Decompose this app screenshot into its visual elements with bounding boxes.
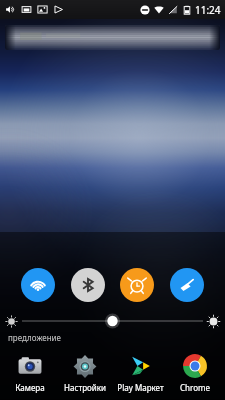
- button[interactable]: Настройки: [58, 352, 112, 394]
- button[interactable]: [5, 25, 220, 50]
- button[interactable]: Bluetooth: [71, 268, 105, 302]
- button[interactable]: Wi-Fi: [21, 268, 55, 302]
- button[interactable]: Chrome: [168, 352, 222, 394]
- button[interactable]: Cleaner: [170, 268, 204, 302]
- button[interactable]: Камера: [3, 352, 57, 394]
- button[interactable]: Alarm: [120, 268, 154, 302]
- button[interactable]: Play Маркет: [113, 352, 167, 394]
- staticText: Настройки: [64, 382, 106, 393]
- staticText: предложение: [8, 332, 61, 343]
- staticText: 11:24: [195, 3, 221, 17]
- button[interactable]: Brightness: [6, 312, 219, 330]
- staticText: Камера: [15, 382, 45, 393]
- staticText: Play Маркет: [117, 382, 164, 393]
- staticText: Chrome: [180, 382, 210, 393]
